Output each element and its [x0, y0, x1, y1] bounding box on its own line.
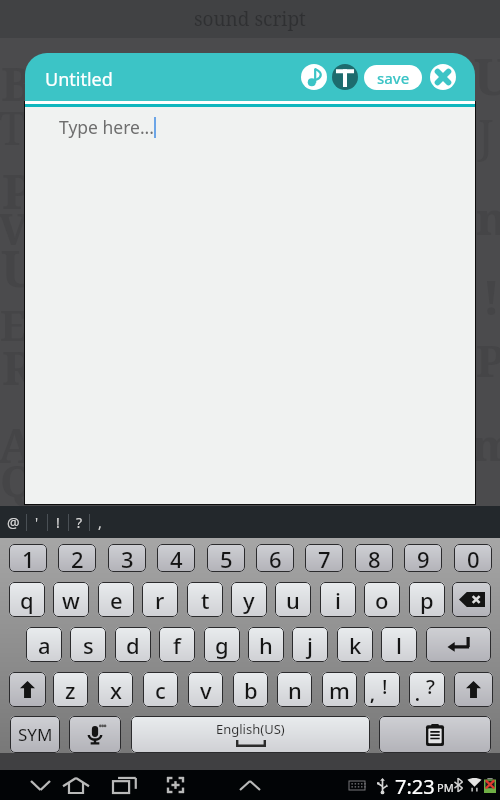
button[interactable]: Text style — [332, 64, 358, 90]
button[interactable]: s — [70, 627, 106, 662]
button[interactable]: Clipboard — [379, 716, 491, 753]
staticText: t — [201, 585, 210, 615]
button[interactable]: 6 — [256, 544, 294, 572]
staticText: 7 — [318, 544, 331, 572]
button[interactable]: 1 — [9, 544, 47, 572]
staticText: p — [420, 585, 434, 615]
button[interactable]: a — [26, 627, 62, 662]
staticText: Type here... — [59, 115, 154, 139]
staticText: n — [288, 675, 302, 705]
button[interactable]: c — [143, 672, 178, 707]
button[interactable]: m — [322, 672, 357, 707]
button[interactable]: ' — [27, 506, 47, 538]
staticText: V — [0, 198, 29, 258]
button[interactable]: , — [90, 506, 110, 538]
staticText: 6 — [269, 544, 282, 572]
button[interactable]: j — [292, 627, 328, 662]
staticText: 8 — [368, 544, 381, 572]
button[interactable]: Home — [58, 770, 94, 800]
button[interactable]: h — [248, 627, 284, 662]
button[interactable]: 5 — [207, 544, 245, 572]
button[interactable]: z — [53, 672, 88, 707]
staticText: g — [215, 630, 229, 660]
button[interactable]: i — [320, 582, 356, 617]
button[interactable]: g — [204, 627, 240, 662]
button[interactable]: 8 — [355, 544, 393, 572]
button[interactable]: Close — [430, 64, 456, 90]
button[interactable]: k — [337, 627, 373, 662]
button[interactable]: f — [159, 627, 195, 662]
button[interactable]: y — [231, 582, 267, 617]
staticText: d — [126, 630, 140, 660]
button[interactable]: q — [9, 582, 45, 617]
staticText: P — [2, 158, 33, 223]
staticText: i — [335, 585, 341, 615]
button[interactable]: 2 — [58, 544, 96, 572]
staticText: A — [0, 412, 35, 477]
button[interactable]: 7 — [305, 544, 343, 572]
button[interactable]: ? — [69, 506, 89, 538]
staticText: f — [173, 630, 181, 660]
button[interactable]: Shift — [9, 672, 46, 707]
button[interactable]: Record sound — [301, 64, 327, 90]
button[interactable]: Expand — [232, 770, 268, 800]
button[interactable]: b — [233, 672, 268, 707]
staticText: 1 — [22, 544, 35, 572]
staticText: m — [472, 414, 500, 474]
staticText: @ — [7, 513, 20, 532]
button[interactable]: o — [364, 582, 400, 617]
button[interactable]: 3 — [108, 544, 146, 572]
button[interactable]: u — [275, 582, 311, 617]
button[interactable]: 9 — [404, 544, 442, 572]
button[interactable]: 0 — [454, 544, 492, 572]
button[interactable]: r — [142, 582, 178, 617]
button[interactable]: Switch keyboard — [157, 770, 193, 800]
button[interactable]: 4 — [157, 544, 195, 572]
button[interactable]: e — [98, 582, 134, 617]
button[interactable]: p — [409, 582, 445, 617]
staticText: ! — [56, 513, 60, 532]
staticText: R — [2, 336, 35, 399]
button[interactable]: save — [364, 65, 422, 90]
button[interactable]: English(US) — [131, 716, 370, 753]
button[interactable]: Backspace — [452, 582, 491, 617]
staticText: y — [243, 585, 255, 615]
button[interactable]: Voice input — [69, 716, 121, 753]
button[interactable]: n — [277, 672, 312, 707]
button[interactable]: Shift — [454, 672, 493, 707]
button[interactable]: SYM — [10, 716, 60, 753]
staticText: h — [259, 630, 273, 660]
staticText: . — [415, 683, 420, 706]
button[interactable]: x — [98, 672, 133, 707]
staticText: B — [1, 52, 32, 115]
button[interactable]: ? — [409, 672, 445, 707]
staticText: 9 — [417, 544, 430, 572]
staticText: u — [286, 585, 300, 615]
staticText: Q — [0, 450, 35, 510]
button[interactable]: d — [115, 627, 151, 662]
button[interactable]: w — [53, 582, 89, 617]
staticText: w — [62, 585, 80, 615]
staticText: 2 — [71, 544, 84, 572]
staticText: j — [307, 630, 313, 660]
button[interactable]: l — [381, 627, 417, 662]
button[interactable]: Enter — [426, 627, 491, 662]
staticText: r — [155, 585, 165, 615]
button[interactable]: ! — [364, 672, 400, 707]
button[interactable]: @ — [0, 506, 26, 538]
staticText: l — [396, 630, 402, 660]
button[interactable]: v — [188, 672, 223, 707]
staticText: U — [474, 42, 500, 110]
button[interactable]: ! — [48, 506, 68, 538]
button[interactable]: Hide keyboard — [22, 770, 58, 800]
button[interactable]: t — [187, 582, 223, 617]
staticText: o — [375, 585, 389, 615]
staticText: , — [370, 683, 375, 706]
button[interactable]: Recent apps — [106, 770, 142, 800]
staticText: e — [110, 585, 123, 615]
staticText: 4 — [170, 544, 183, 572]
staticText: 5 — [220, 544, 233, 572]
staticText: q — [20, 585, 34, 615]
